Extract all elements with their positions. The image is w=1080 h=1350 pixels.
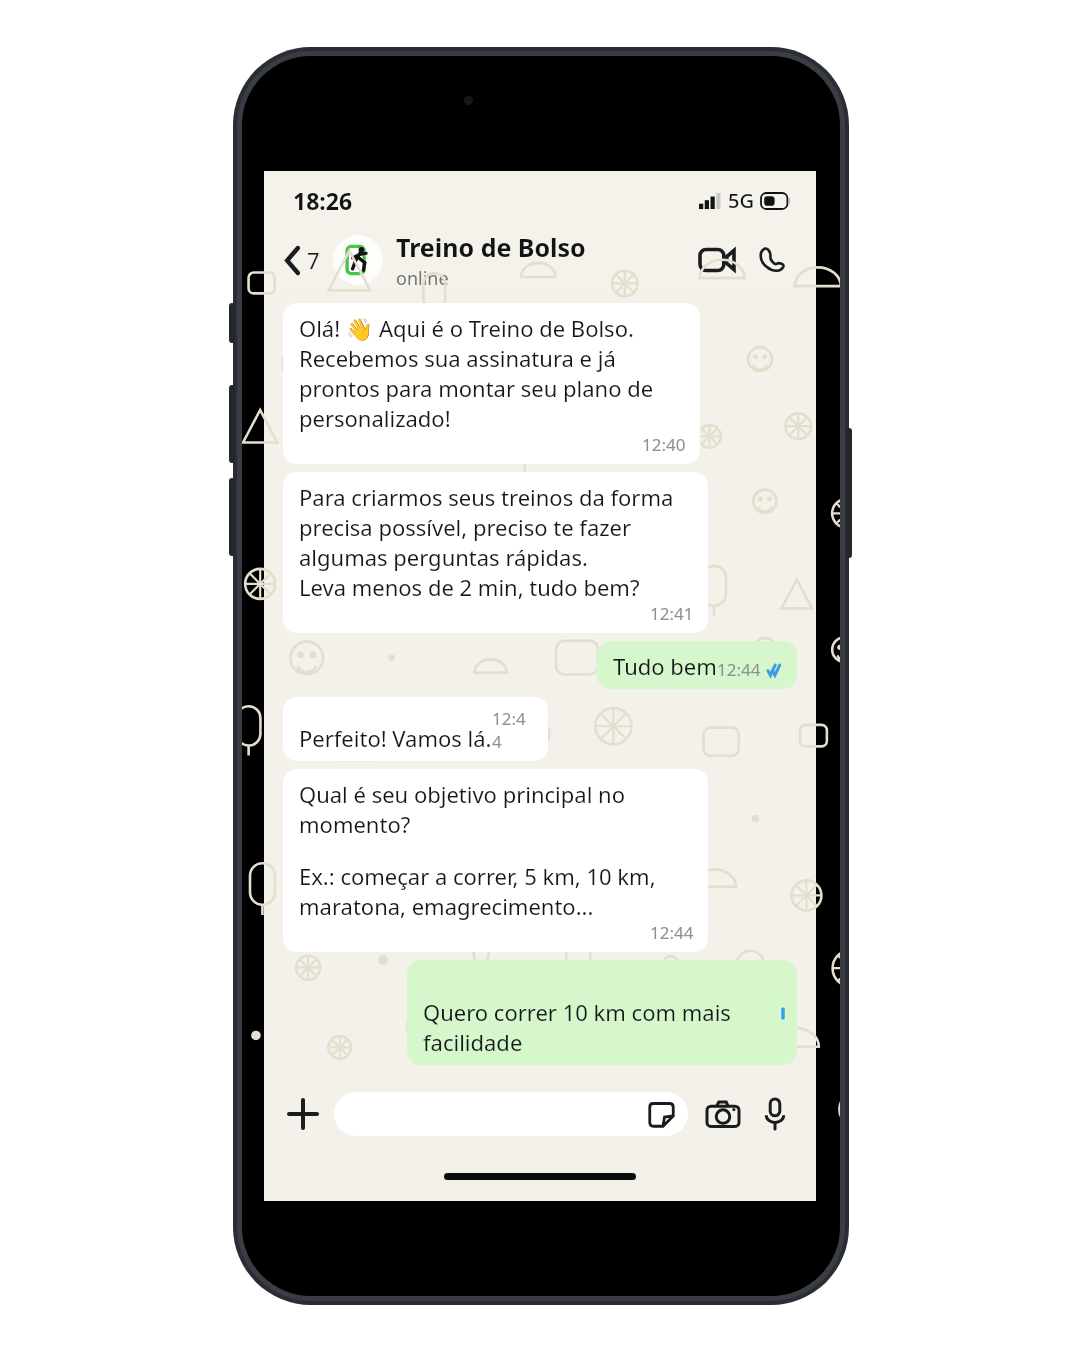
staticText: Qual é seu objetivo principal no <box>299 779 625 809</box>
staticText: Treino de Bolso <box>396 230 586 264</box>
staticText: online <box>396 266 449 291</box>
button[interactable]: Video call <box>694 237 740 283</box>
staticText: maratona, emagrecimento... <box>299 891 594 921</box>
staticText: Leva menos de 2 min, tudo bem? <box>299 572 640 602</box>
button[interactable]: Treino de Bolso <box>396 230 694 291</box>
staticText: Ex.: começar a correr, 5 km, 10 km, meia <box>299 861 694 891</box>
staticText: 12:40 <box>642 433 686 456</box>
staticText: 12:41 <box>650 602 694 625</box>
button[interactable]: Tudo bem <box>597 641 797 689</box>
staticText: Recebemos sua assinatura e já estamos <box>299 343 686 373</box>
staticText: 7 <box>307 245 320 275</box>
staticText: Perfeito! Vamos lá. <box>299 723 492 753</box>
staticText: momento? <box>299 809 411 839</box>
button[interactable]: Back, 7 unread <box>282 239 324 281</box>
button[interactable]: Perfeito! Vamos lá. <box>283 697 548 761</box>
button[interactable]: Para criarmos seus treinos da forma mais <box>283 472 708 633</box>
staticText: Para criarmos seus treinos da forma mais <box>299 482 694 512</box>
staticText: Quero correr 10 km com mais facilidade <box>423 997 783 1057</box>
button[interactable]: Qual é seu objetivo principal no <box>283 769 708 952</box>
button[interactable]: Attach <box>280 1091 326 1137</box>
button[interactable]: Voice call <box>748 237 794 283</box>
button[interactable]: Quero correr 10 km com mais facilidade <box>407 960 797 1065</box>
staticText: 18:26 <box>293 185 353 216</box>
button[interactable] <box>334 1092 688 1136</box>
staticText: algumas perguntas rápidas. <box>299 542 588 572</box>
staticText: precisa possível, preciso te fazer <box>299 512 632 542</box>
staticText: Tudo bem <box>613 651 717 681</box>
button[interactable]: Voice message <box>752 1091 798 1137</box>
staticText: 12:44 <box>650 921 694 944</box>
staticText: 5G <box>728 187 754 214</box>
button[interactable]: Camera <box>700 1091 746 1137</box>
staticText: prontos para montar seu plano de corrida <box>299 373 686 403</box>
staticText: personalizado! <box>299 403 451 433</box>
staticText: 12:44 <box>717 658 761 681</box>
button[interactable]: Olá! 👋 Aqui é o Treino de Bolso. <box>283 303 700 464</box>
staticText: 12:44 <box>492 707 534 753</box>
staticText: Olá! 👋 Aqui é o Treino de Bolso. <box>299 313 634 343</box>
button[interactable]: Profile photo <box>333 235 383 285</box>
